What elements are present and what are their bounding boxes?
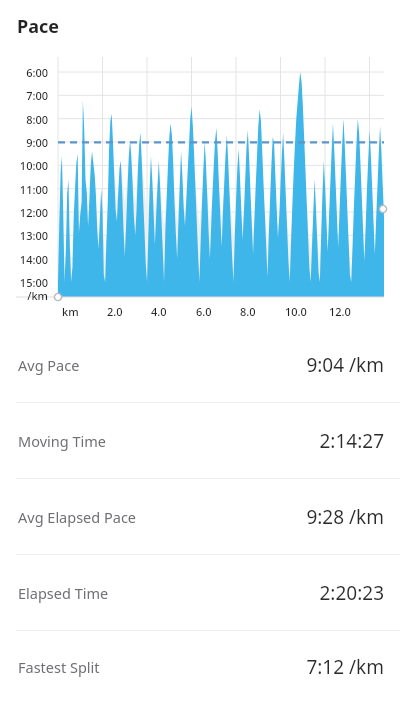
staticText: 7:12 /km — [306, 654, 384, 680]
staticText: 4.0 — [151, 304, 167, 319]
staticText: 12.0 — [329, 304, 351, 319]
staticText: Moving Time — [18, 431, 106, 451]
staticText: 11:00 — [19, 182, 48, 197]
staticText: Pace — [17, 14, 59, 39]
button[interactable]: Avg Elapsed Pace — [0, 479, 400, 554]
other: Pace chart — [0, 47, 400, 322]
staticText: Elapsed Time — [18, 583, 109, 603]
staticText: 14:00 — [19, 252, 48, 267]
staticText: 8:00 — [26, 112, 48, 127]
button[interactable]: Fastest Split — [0, 631, 400, 703]
staticText: 7:00 — [26, 88, 48, 103]
staticText: 9:04 /km — [306, 352, 384, 378]
staticText: 10.0 — [285, 304, 307, 319]
staticText: 2.0 — [107, 304, 123, 319]
button[interactable]: Avg Pace — [0, 327, 400, 402]
staticText: 10:00 — [19, 158, 48, 173]
staticText: 2:14:27 — [319, 428, 384, 454]
staticText: 6:00 — [26, 65, 48, 80]
staticText: 9:00 — [26, 135, 48, 150]
staticText: 2:20:23 — [319, 580, 384, 606]
staticText: 8.0 — [240, 304, 256, 319]
staticText: 13:00 — [19, 228, 48, 243]
button[interactable]: Moving Time — [0, 403, 400, 478]
button[interactable]: Elapsed Time — [0, 555, 400, 630]
staticText: km — [62, 304, 79, 319]
staticText: 15:00 — [19, 275, 48, 290]
staticText: 6.0 — [196, 304, 212, 319]
staticText: 12:00 — [19, 205, 48, 220]
staticText: Avg Pace — [18, 355, 80, 375]
staticText: /km — [27, 288, 48, 303]
staticText: Fastest Split — [18, 657, 100, 677]
staticText: 9:28 /km — [306, 504, 384, 530]
staticText: Avg Elapsed Pace — [18, 507, 137, 527]
